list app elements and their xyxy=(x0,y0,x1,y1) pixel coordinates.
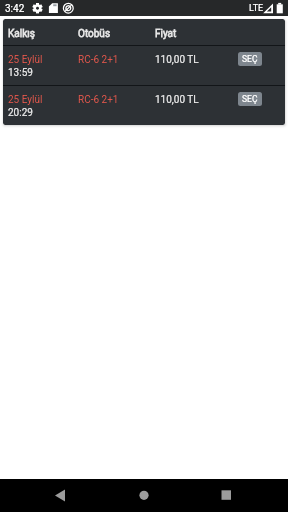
staticText: 3:42 xyxy=(5,3,25,15)
staticText: RC-6 2+1 xyxy=(78,54,119,66)
staticText: 110,00 TL xyxy=(155,54,199,66)
button[interactable]: SEÇ xyxy=(238,92,262,106)
button[interactable]: SEÇ xyxy=(238,52,262,66)
staticText: SEÇ xyxy=(242,94,258,104)
staticText: 20:29 xyxy=(8,107,33,119)
staticText: RC-6 2+1 xyxy=(78,94,119,106)
staticText: 110,00 TL xyxy=(155,94,199,106)
button[interactable]: Back xyxy=(48,484,72,508)
staticText: Otobüs xyxy=(78,28,111,40)
button[interactable]: Recent apps xyxy=(214,484,238,508)
staticText: Kalkış xyxy=(8,28,35,40)
staticText: 13:59 xyxy=(8,67,33,79)
staticText: LTE xyxy=(249,3,264,14)
staticText: 25 Eylül xyxy=(8,54,43,66)
button[interactable]: 25 Eylül xyxy=(3,85,285,125)
button[interactable]: Home xyxy=(132,484,156,508)
staticText: 25 Eylül xyxy=(8,94,43,106)
button[interactable]: 25 Eylül xyxy=(3,45,285,85)
staticText: Fiyat xyxy=(155,28,177,40)
staticText: SEÇ xyxy=(242,54,258,64)
